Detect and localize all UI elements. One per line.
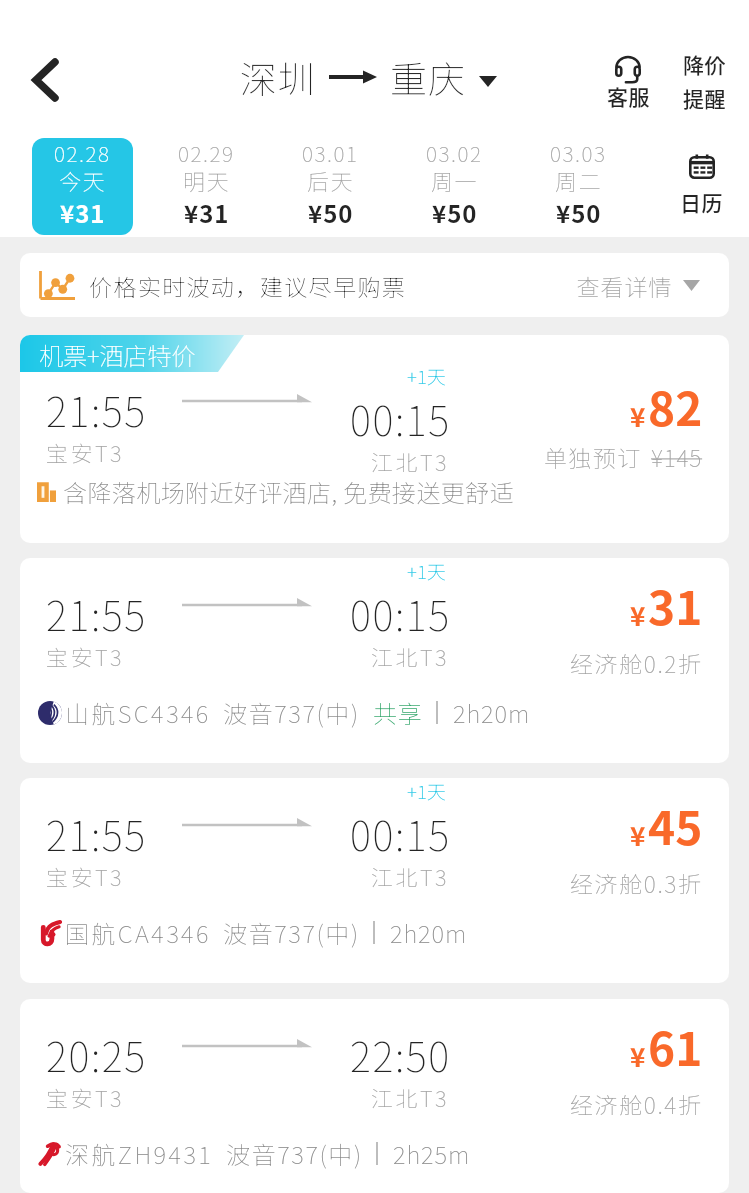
button[interactable]: 02.29 bbox=[156, 138, 257, 235]
button[interactable]: 03.03 bbox=[528, 138, 629, 235]
staticText: +1天 bbox=[407, 362, 446, 390]
staticText: 31 bbox=[648, 572, 703, 639]
button[interactable]: 机票+酒店特价 bbox=[20, 335, 729, 543]
staticText: 宝安T3 bbox=[46, 640, 125, 672]
staticText: 客服 bbox=[607, 81, 650, 111]
staticText: 波音737(中) bbox=[223, 695, 360, 730]
staticText: 明天 bbox=[183, 164, 231, 196]
staticText: 经济舱0.2折 bbox=[570, 646, 703, 679]
staticText: 含降落机场附近好评酒店, 免费接送更舒适 bbox=[63, 474, 514, 509]
button[interactable]: Back bbox=[11, 46, 79, 114]
staticText: +1天 bbox=[407, 778, 446, 805]
staticText: 03.01 bbox=[302, 138, 359, 168]
staticText: 波音737(中) bbox=[226, 1136, 363, 1171]
staticText: 21:55 bbox=[46, 805, 147, 863]
staticText: ¥ bbox=[630, 596, 646, 634]
staticText: 机票+酒店特价 bbox=[39, 337, 196, 372]
button[interactable]: 21:55 bbox=[20, 778, 729, 983]
staticText: 03.03 bbox=[550, 138, 607, 168]
staticText: 单独预订 bbox=[543, 440, 641, 473]
staticText: 45 bbox=[648, 792, 703, 859]
staticText: 波音737(中) bbox=[223, 915, 360, 950]
staticText: 后天 bbox=[307, 164, 355, 196]
staticText: 深圳 bbox=[240, 50, 316, 104]
button[interactable]: 价格实时波动，建议尽早购票 bbox=[20, 253, 729, 317]
staticText: 查看详情 bbox=[576, 269, 672, 302]
staticText: 00:15 bbox=[350, 585, 451, 643]
staticText: 21:55 bbox=[46, 381, 147, 439]
staticText: 周二 bbox=[555, 164, 603, 196]
staticText: ¥31 bbox=[184, 195, 230, 230]
button[interactable]: 深圳 bbox=[235, 50, 502, 104]
staticText: 22:50 bbox=[350, 1026, 451, 1084]
staticText: ¥50 bbox=[556, 195, 602, 230]
button[interactable]: 03.01 bbox=[280, 138, 381, 235]
staticText: 价格实时波动，建议尽早购票 bbox=[89, 269, 407, 302]
staticText: 共享 bbox=[373, 695, 423, 730]
button[interactable]: 日历 calendar bbox=[647, 150, 749, 217]
staticText: ¥ bbox=[630, 1037, 646, 1075]
staticText: 国航CA4346 bbox=[65, 915, 211, 950]
staticText: 江北T3 bbox=[371, 445, 450, 477]
staticText: 周一 bbox=[431, 164, 479, 196]
staticText: 经济舱0.4折 bbox=[570, 1087, 703, 1120]
button[interactable]: 03.02 bbox=[404, 138, 505, 235]
staticText: ¥31 bbox=[60, 195, 106, 230]
staticText: ¥ bbox=[630, 397, 646, 435]
staticText: ¥ bbox=[630, 816, 646, 854]
staticText: 宝安T3 bbox=[46, 436, 125, 468]
staticText: 江北T3 bbox=[371, 1081, 450, 1113]
staticText: 00:15 bbox=[350, 390, 451, 448]
staticText: 61 bbox=[648, 1013, 703, 1080]
staticText: ¥50 bbox=[432, 195, 478, 230]
staticText: 江北T3 bbox=[371, 640, 450, 672]
staticText: 今天 bbox=[59, 164, 107, 196]
staticText: 02.28 bbox=[54, 138, 111, 168]
button[interactable]: 02.28 bbox=[32, 138, 133, 235]
staticText: 降价 bbox=[683, 49, 726, 79]
staticText: 山航SC4346 bbox=[65, 695, 211, 730]
staticText: 82 bbox=[648, 373, 703, 440]
staticText: 20:25 bbox=[46, 1026, 147, 1084]
staticText: +1天 bbox=[407, 558, 446, 585]
button[interactable]: 降价 bbox=[672, 50, 730, 110]
button[interactable]: 客服 customer service bbox=[596, 50, 660, 111]
staticText: 21:55 bbox=[46, 585, 147, 643]
staticText: 宝安T3 bbox=[46, 860, 125, 892]
staticText: ¥50 bbox=[308, 195, 354, 230]
button[interactable]: 20:25 bbox=[20, 999, 729, 1193]
staticText: 重庆 bbox=[390, 50, 466, 104]
staticText: 深航ZH9431 bbox=[65, 1136, 214, 1171]
staticText: 日历 bbox=[680, 187, 723, 217]
staticText: 2h20m bbox=[390, 915, 468, 950]
button[interactable]: 21:55 bbox=[20, 558, 729, 763]
staticText: ¥145 bbox=[651, 440, 703, 473]
staticText: 02.29 bbox=[178, 138, 235, 168]
staticText: 江北T3 bbox=[371, 860, 450, 892]
staticText: 提醒 bbox=[683, 83, 726, 113]
staticText: 03.02 bbox=[426, 138, 483, 168]
staticText: 2h20m bbox=[453, 695, 531, 730]
staticText: 经济舱0.3折 bbox=[570, 866, 703, 899]
staticText: 宝安T3 bbox=[46, 1081, 125, 1113]
staticText: 00:15 bbox=[350, 805, 451, 863]
staticText: 2h25m bbox=[393, 1136, 471, 1171]
